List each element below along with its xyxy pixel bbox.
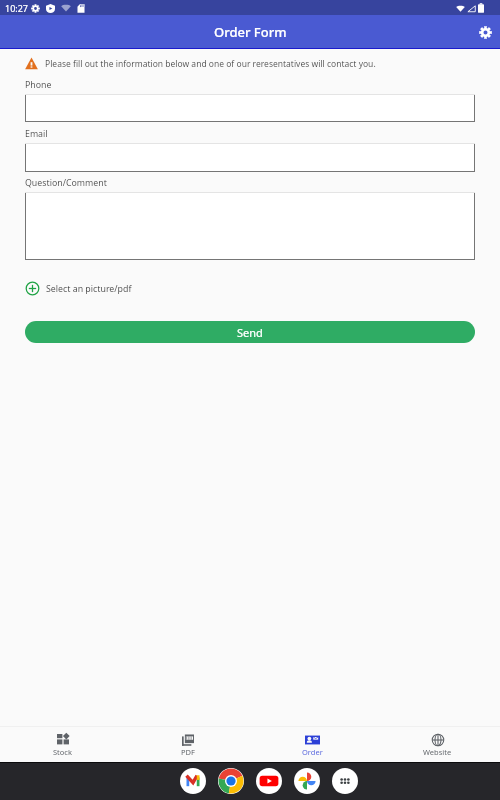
button[interactable]: Settings: [468, 15, 500, 49]
staticText: PDF: [181, 747, 195, 757]
staticText: Email: [25, 128, 48, 140]
staticText: Stock: [53, 747, 72, 757]
staticText: Order: [302, 747, 323, 757]
button[interactable]: [25, 192, 475, 260]
button[interactable]: [25, 94, 475, 122]
button[interactable]: Send: [25, 321, 475, 343]
button[interactable]: Gmail: [180, 768, 206, 794]
button[interactable]: Stock: [0, 727, 125, 762]
button[interactable]: Website: [375, 727, 500, 762]
staticText: Please fill out the information below an…: [45, 58, 376, 70]
staticText: 10:27: [5, 2, 29, 14]
staticText: Website: [423, 747, 452, 757]
button[interactable]: All apps: [332, 768, 358, 794]
button[interactable]: PDF: [125, 727, 250, 762]
staticText: Order Form: [214, 23, 287, 41]
staticText: Send: [237, 325, 263, 340]
button[interactable]: Photos: [294, 768, 320, 794]
button[interactable]: Order: [250, 727, 375, 762]
staticText: Phone: [25, 79, 52, 91]
button[interactable]: [25, 143, 475, 172]
button[interactable]: YouTube: [256, 768, 282, 794]
button[interactable]: Select an picture/pdf: [25, 281, 132, 296]
staticText: Select an picture/pdf: [46, 283, 132, 295]
button[interactable]: Chrome: [218, 768, 244, 794]
staticText: Question/Comment: [25, 177, 107, 189]
